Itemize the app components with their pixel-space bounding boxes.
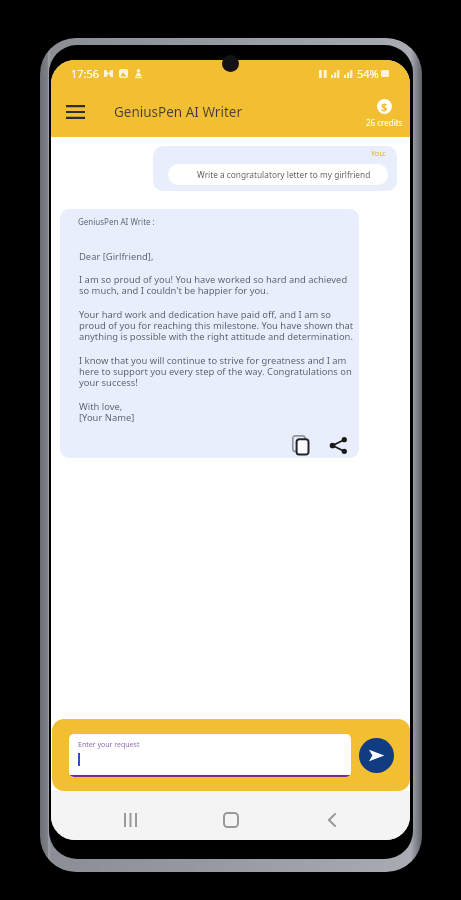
button[interactable]: Share — [326, 433, 350, 457]
button[interactable]: Copy — [288, 433, 312, 457]
button[interactable]: Enter your request — [69, 734, 351, 777]
staticText: I know that you will continue to strive … — [79, 354, 352, 389]
staticText: You: — [371, 148, 387, 158]
staticText: 26 credits — [366, 117, 403, 128]
button[interactable]: Send — [359, 738, 394, 773]
staticText: Your hard work and dedication have paid … — [79, 308, 354, 343]
button[interactable]: Back — [314, 802, 350, 838]
button[interactable]: Menu — [57, 94, 93, 130]
staticText: Dear [Girlfriend], — [79, 250, 154, 263]
button[interactable]: Write a congratulatory letter to my girl… — [168, 164, 388, 185]
staticText: GeniusPen AI Writer — [114, 103, 242, 121]
staticText: Write a congratulatory letter to my girl… — [197, 169, 371, 180]
staticText: GeniusPen AI Write : — [78, 216, 155, 227]
staticText: 54% — [357, 66, 379, 81]
button[interactable]: Home — [213, 802, 249, 838]
staticText: $ — [381, 99, 388, 114]
staticText: With love, [Your Name] — [79, 400, 135, 424]
button[interactable]: Recents — [112, 802, 148, 838]
staticText: 17:56 — [71, 66, 100, 81]
button[interactable]: 26 credits — [366, 97, 403, 128]
staticText: Enter your request — [78, 740, 140, 750]
staticText: I am so proud of you! You have worked so… — [79, 273, 348, 297]
